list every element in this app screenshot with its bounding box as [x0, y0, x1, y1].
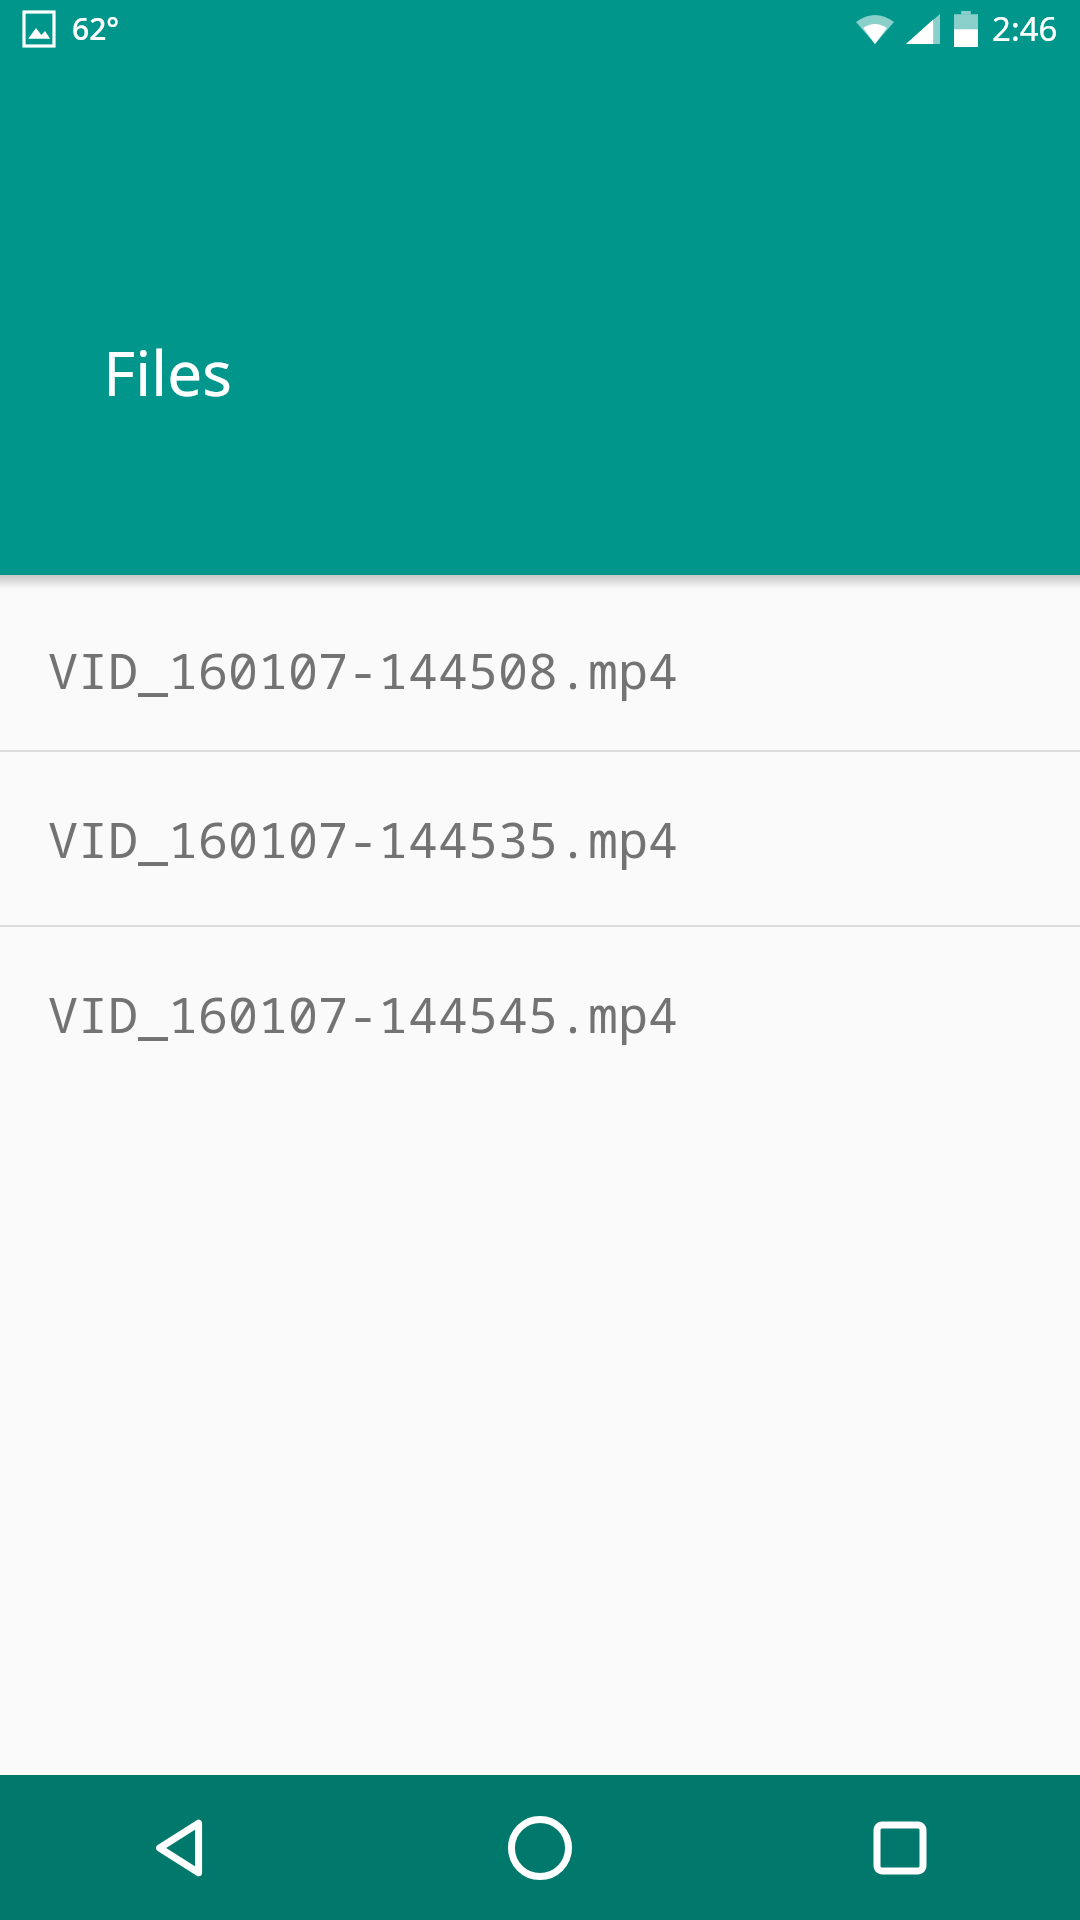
- staticText: Files: [103, 330, 232, 414]
- button[interactable]: Back: [0, 1775, 360, 1920]
- staticText: VID_160107-144545.mp4: [48, 980, 678, 1048]
- staticText: VID_160107-144535.mp4: [48, 805, 678, 873]
- button[interactable]: VID_160107-144508.mp4: [0, 590, 1080, 750]
- staticText: VID_160107-144508.mp4: [48, 636, 678, 704]
- button[interactable]: VID_160107-144545.mp4: [0, 927, 1080, 1100]
- staticText: 62°: [72, 8, 120, 49]
- button[interactable]: VID_160107-144535.mp4: [0, 752, 1080, 925]
- button[interactable]: Home: [360, 1775, 720, 1920]
- staticText: 2:46: [992, 6, 1058, 51]
- button[interactable]: Recent apps: [720, 1775, 1080, 1920]
